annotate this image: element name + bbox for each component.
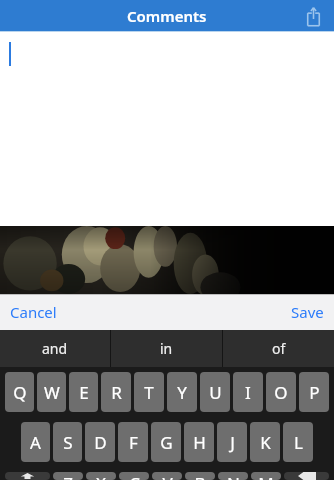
staticText: Save — [291, 302, 324, 322]
staticText: W — [44, 381, 60, 404]
staticText: X — [96, 472, 106, 480]
staticText: B — [194, 472, 206, 480]
button[interactable]: A — [21, 422, 50, 462]
staticText: U — [209, 381, 222, 404]
button[interactable]: O — [266, 372, 296, 412]
button[interactable]: W — [37, 372, 66, 412]
button[interactable]: Y — [167, 372, 197, 412]
button[interactable]: P — [299, 372, 329, 412]
button[interactable]: Q — [5, 372, 34, 412]
button[interactable]: X — [86, 472, 116, 480]
staticText: K — [260, 431, 271, 454]
staticText: Cancel — [10, 302, 57, 322]
button[interactable]: R — [101, 372, 131, 412]
staticText: F — [129, 431, 138, 454]
button[interactable]: Cancel — [10, 294, 57, 330]
button[interactable]: I — [233, 372, 263, 412]
button[interactable]: of — [223, 330, 334, 367]
button[interactable]: C — [119, 472, 149, 480]
staticText: T — [144, 381, 154, 404]
staticText: Z — [63, 472, 73, 480]
button[interactable]: L — [283, 422, 313, 462]
button[interactable]: G — [151, 422, 181, 462]
staticText: G — [160, 431, 173, 454]
button[interactable]: U — [200, 372, 230, 412]
staticText: R — [111, 381, 122, 404]
staticText: of — [272, 339, 286, 358]
staticText: and — [42, 339, 68, 358]
button[interactable]: E — [69, 372, 98, 412]
button[interactable]: H — [184, 422, 214, 462]
staticText: Comments — [127, 6, 207, 26]
staticText: L — [294, 431, 303, 454]
button[interactable]: Delete — [284, 472, 329, 480]
staticText: J — [230, 431, 235, 454]
staticText: N — [227, 472, 240, 480]
button[interactable]: M — [251, 472, 281, 480]
button[interactable]: Save — [291, 294, 324, 330]
staticText: D — [94, 431, 107, 454]
button[interactable]: B — [185, 472, 215, 480]
staticText: P — [309, 381, 320, 404]
button[interactable]: Share — [298, 1, 328, 31]
button[interactable]: D — [85, 422, 115, 462]
staticText: O — [274, 381, 288, 404]
button[interactable]: and — [0, 330, 110, 367]
button[interactable]: S — [53, 422, 82, 462]
button[interactable]: K — [250, 422, 280, 462]
button[interactable]: V — [152, 472, 182, 480]
button[interactable]: F — [118, 422, 148, 462]
staticText: A — [30, 431, 41, 454]
staticText: M — [258, 472, 274, 480]
staticText: H — [193, 431, 206, 454]
staticText: S — [63, 431, 73, 454]
staticText: C — [129, 472, 140, 480]
button[interactable]: in — [111, 330, 222, 367]
staticText: Q — [13, 381, 27, 404]
button[interactable] — [0, 32, 334, 226]
button[interactable]: Z — [53, 472, 83, 480]
button[interactable]: T — [134, 372, 164, 412]
staticText: E — [79, 381, 89, 404]
staticText: in — [160, 339, 173, 358]
button[interactable]: Shift — [5, 472, 50, 480]
staticText: Y — [177, 381, 187, 404]
button[interactable]: N — [218, 472, 248, 480]
button[interactable]: J — [217, 422, 247, 462]
staticText: V — [162, 472, 173, 480]
staticText: I — [245, 381, 251, 404]
